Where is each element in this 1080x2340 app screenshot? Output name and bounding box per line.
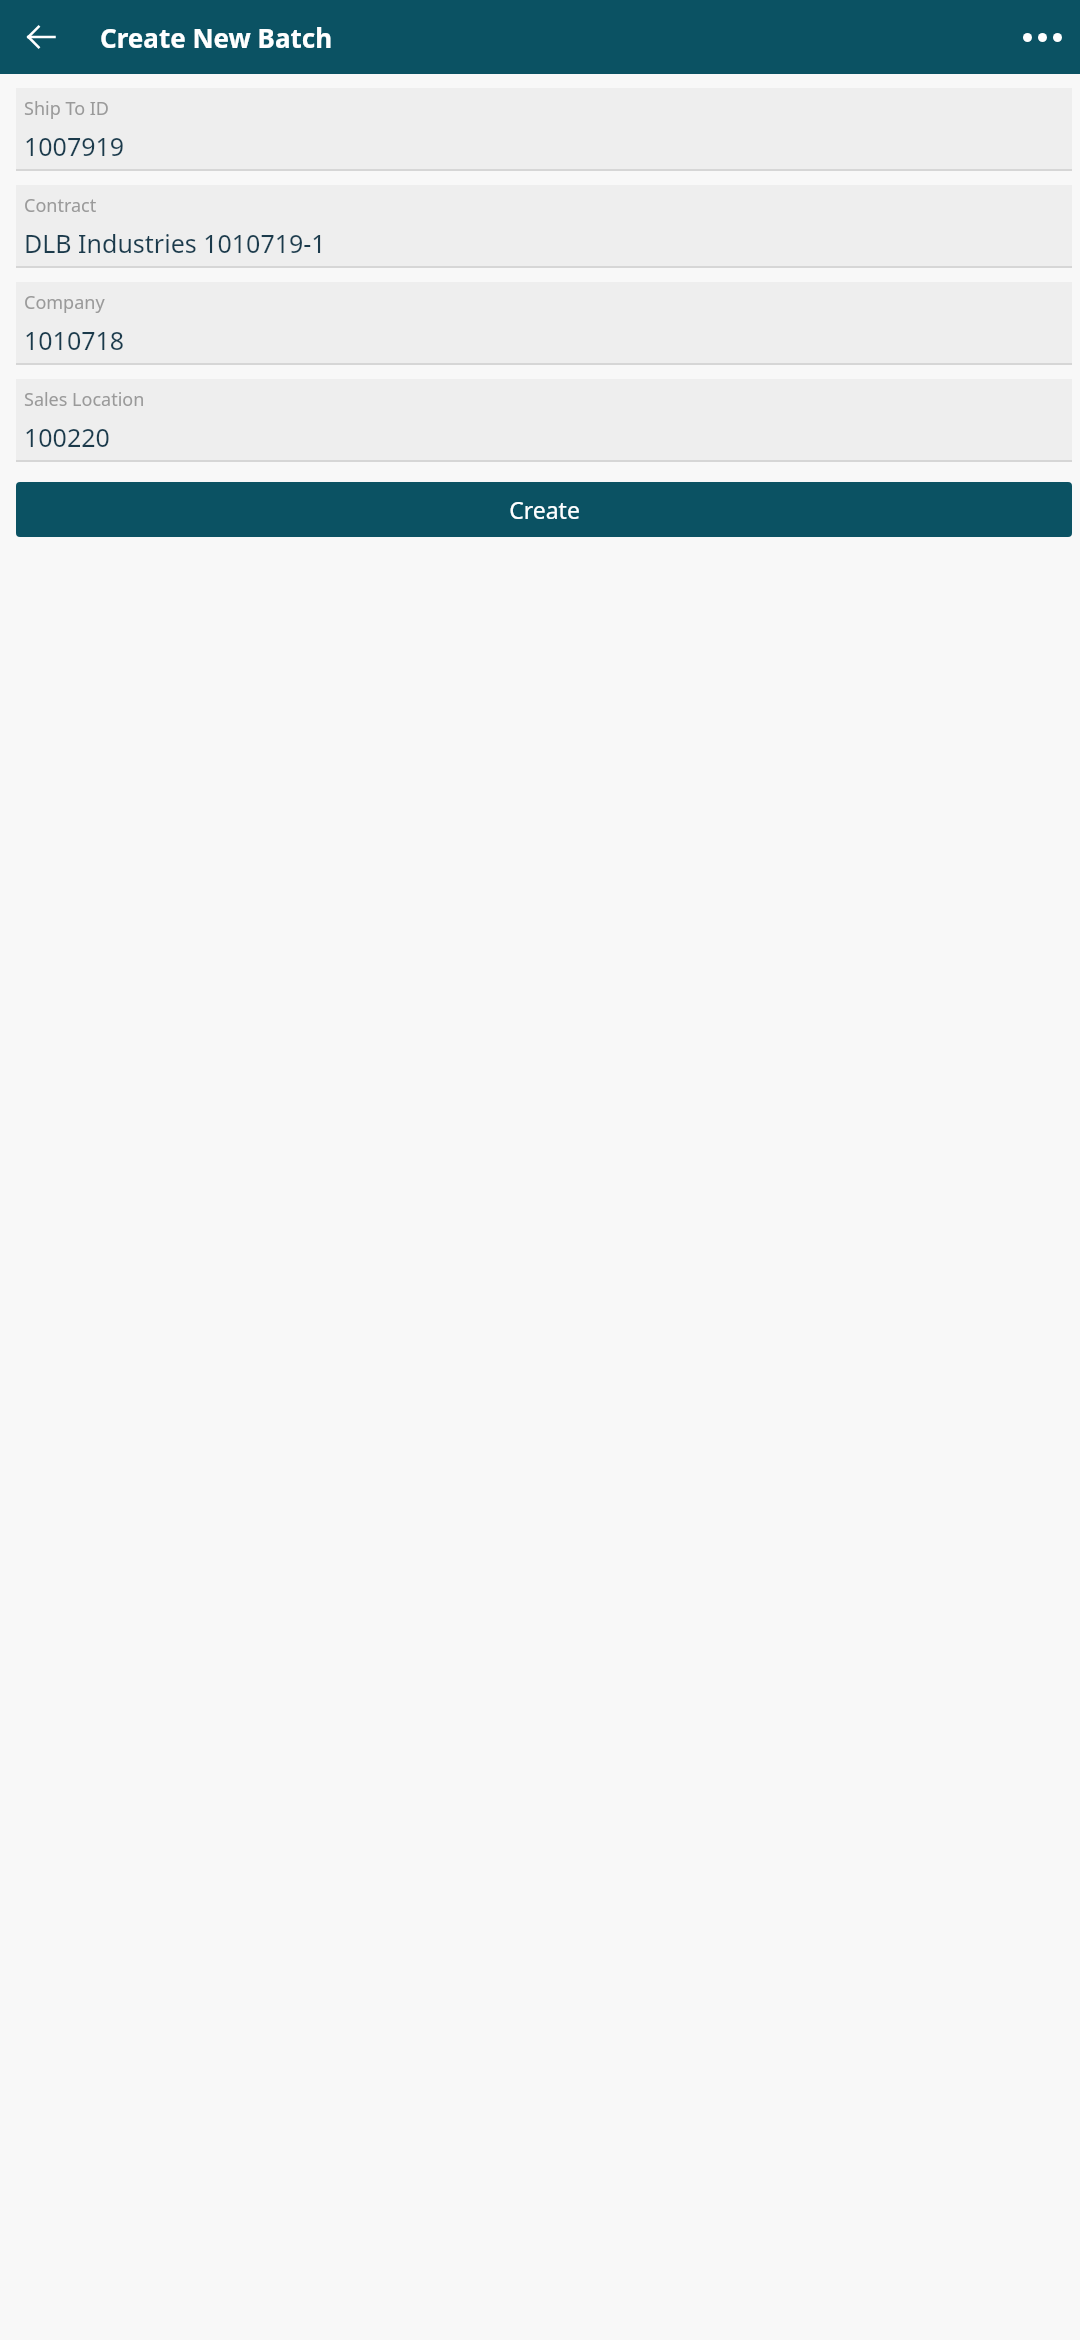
button[interactable]: More options xyxy=(1014,9,1070,65)
button[interactable]: Back xyxy=(14,10,68,64)
button[interactable]: Sales Location xyxy=(16,379,1072,462)
staticText: 1010718 xyxy=(24,323,125,357)
staticText: 1007919 xyxy=(24,129,125,163)
button[interactable]: Company xyxy=(16,282,1072,365)
staticText: DLB Industries 1010719-1 xyxy=(24,226,326,260)
staticText: 100220 xyxy=(24,420,110,454)
staticText: Ship To ID xyxy=(24,96,109,121)
button[interactable]: Create xyxy=(16,482,1072,537)
button[interactable]: Ship To ID xyxy=(16,88,1072,171)
staticText: Contract xyxy=(24,193,97,218)
staticText: Company xyxy=(24,290,105,315)
staticText: Sales Location xyxy=(24,387,145,412)
staticText: Create New Batch xyxy=(100,20,333,55)
button[interactable]: Contract xyxy=(16,185,1072,268)
staticText: Create xyxy=(509,494,580,525)
